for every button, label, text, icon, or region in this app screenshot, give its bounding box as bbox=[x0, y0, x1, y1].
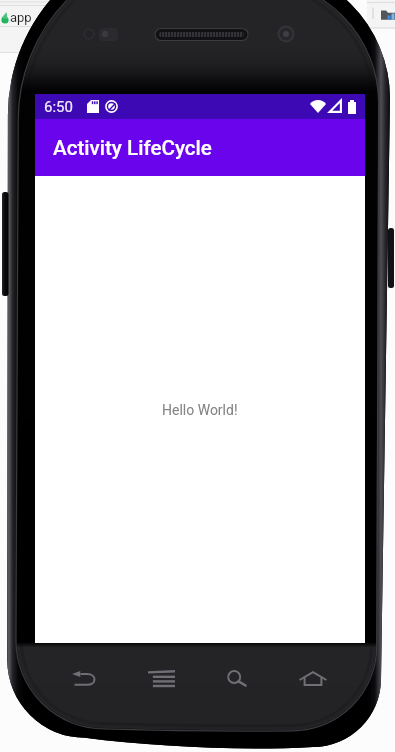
staticText: Hello World! bbox=[162, 402, 238, 418]
staticText: Activity LifeCycle bbox=[53, 136, 212, 160]
button[interactable]: Menu bbox=[123, 656, 199, 700]
button[interactable]: Home bbox=[275, 656, 351, 700]
staticText: app bbox=[10, 10, 32, 25]
button[interactable]: Search bbox=[199, 656, 275, 700]
staticText: 6:50 bbox=[44, 98, 73, 116]
button[interactable]: Back bbox=[46, 656, 123, 700]
